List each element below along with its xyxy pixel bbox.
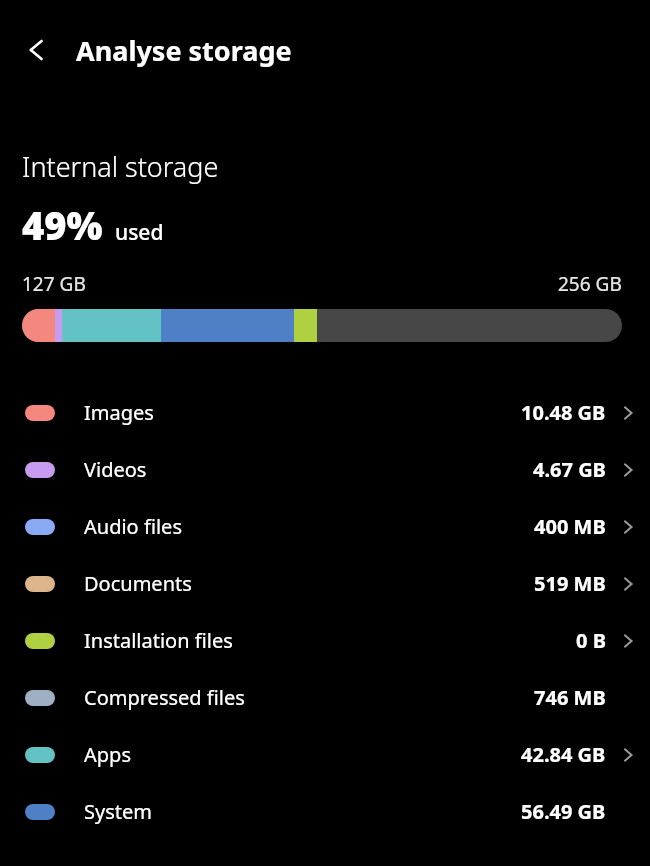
button[interactable]: Videos [0,441,650,498]
staticText: 400 MB [534,513,606,540]
staticText: Documents [84,570,192,597]
button[interactable]: Apps [0,726,650,783]
staticText: 519 MB [534,570,606,597]
staticText: Internal storage [22,148,219,185]
staticText: Apps [84,741,131,768]
staticText: 42.84 GB [521,741,606,768]
staticText: Compressed files [84,684,245,711]
staticText: 746 MB [534,684,606,711]
staticText: Audio files [84,513,182,540]
button[interactable]: Back [14,26,62,74]
staticText: 49% [22,199,103,251]
button[interactable]: Compressed files [0,669,650,726]
staticText: used [115,218,164,247]
staticText: System [84,798,152,825]
button[interactable]: Audio files [0,498,650,555]
staticText: 10.48 GB [521,399,606,426]
button[interactable]: Images [0,384,650,441]
button[interactable]: Installation files [0,612,650,669]
staticText: Installation files [84,627,233,654]
button[interactable]: Documents [0,555,650,612]
staticText: 0 B [576,627,606,654]
staticText: Images [84,399,154,426]
staticText: 127 GB [22,271,86,297]
button[interactable]: System [0,783,650,840]
staticText: Videos [84,456,147,483]
staticText: 256 GB [558,271,622,297]
staticText: 4.67 GB [533,456,606,483]
staticText: Analyse storage [76,32,292,69]
staticText: 56.49 GB [521,798,606,825]
